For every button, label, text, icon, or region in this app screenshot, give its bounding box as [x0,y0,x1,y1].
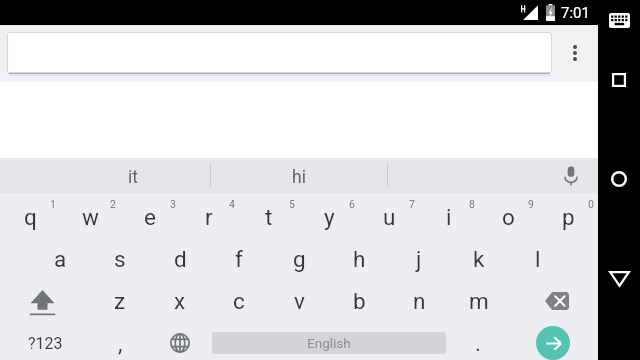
staticText: o [502,204,515,230]
staticText: English [307,335,351,351]
staticText: h [353,246,366,272]
staticText: q [24,204,37,230]
staticText: 7:01 [561,4,590,22]
staticText: . [475,330,481,356]
staticText: c [233,288,245,314]
button[interactable]: o [478,196,538,238]
button[interactable]: Home [604,164,634,194]
staticText: u [383,204,396,230]
staticText: b [353,288,366,314]
staticText: 9 [528,198,534,210]
staticText: , [118,330,123,356]
button[interactable]: hi [211,160,387,195]
staticText: 8 [469,198,475,210]
staticText: n [413,288,426,314]
staticText: e [144,204,156,230]
staticText: ?123 [28,334,63,353]
staticText: 6 [349,198,355,210]
button[interactable]: e [120,196,180,238]
button[interactable]: r [179,196,239,238]
button[interactable]: Shift [0,280,84,322]
staticText: f [235,246,243,272]
staticText: k [473,246,485,272]
button[interactable]: b [329,280,389,322]
staticText: 2 [110,198,116,210]
button[interactable]: Voice input [553,158,589,193]
button[interactable]: p [538,196,598,238]
button[interactable]: Delete [515,280,599,322]
button[interactable]: English [212,332,446,354]
button[interactable]: , [90,322,150,360]
button[interactable]: t [239,196,299,238]
staticText: p [562,204,575,230]
staticText: d [174,246,187,272]
staticText: l [535,246,541,272]
staticText: j [416,246,422,272]
button[interactable]: c [209,280,269,322]
button[interactable]: it [56,160,210,195]
button[interactable]: a [30,238,90,280]
staticText: a [54,246,67,272]
button[interactable]: z [90,280,150,322]
staticText: 5 [289,198,295,210]
staticText: x [174,288,186,314]
staticText: 4 [229,198,235,210]
button[interactable]: Recent apps [604,65,634,95]
staticText: z [114,288,126,314]
button[interactable]: v [269,280,329,322]
staticText: m [469,288,489,314]
staticText: v [294,288,305,314]
button[interactable]: ?123 [0,322,90,360]
staticText: w [82,204,99,230]
button[interactable]: d [150,238,210,280]
button[interactable]: i [419,196,479,238]
staticText: hi [292,167,306,188]
staticText: it [128,167,138,188]
staticText: i [446,204,452,230]
staticText: 0 [588,198,594,210]
button[interactable] [7,32,552,74]
button[interactable]: j [389,238,449,280]
button[interactable]: x [150,280,210,322]
button[interactable]: Enter [536,326,570,360]
button[interactable]: f [209,238,269,280]
button[interactable]: l [508,238,568,280]
button[interactable]: h [329,238,389,280]
staticText: g [293,246,306,272]
button[interactable]: k [449,238,509,280]
button[interactable]: s [90,238,150,280]
button[interactable]: Change language [150,322,210,360]
staticText: s [114,246,126,272]
staticText: y [324,204,335,230]
button[interactable]: More options [559,30,591,76]
staticText: r [205,204,213,230]
button[interactable]: Show keyboard [604,6,634,34]
button[interactable]: m [449,280,509,322]
button[interactable]: . [448,322,508,360]
button[interactable]: g [269,238,329,280]
button[interactable]: n [389,280,449,322]
staticText: 7 [409,198,415,210]
button[interactable]: Back [604,264,634,294]
staticText: t [265,204,273,230]
button[interactable]: w [60,196,120,238]
button[interactable]: u [359,196,419,238]
staticText: 3 [170,198,176,210]
button[interactable]: q [0,196,60,238]
staticText: 1 [50,198,56,210]
button[interactable]: y [299,196,359,238]
